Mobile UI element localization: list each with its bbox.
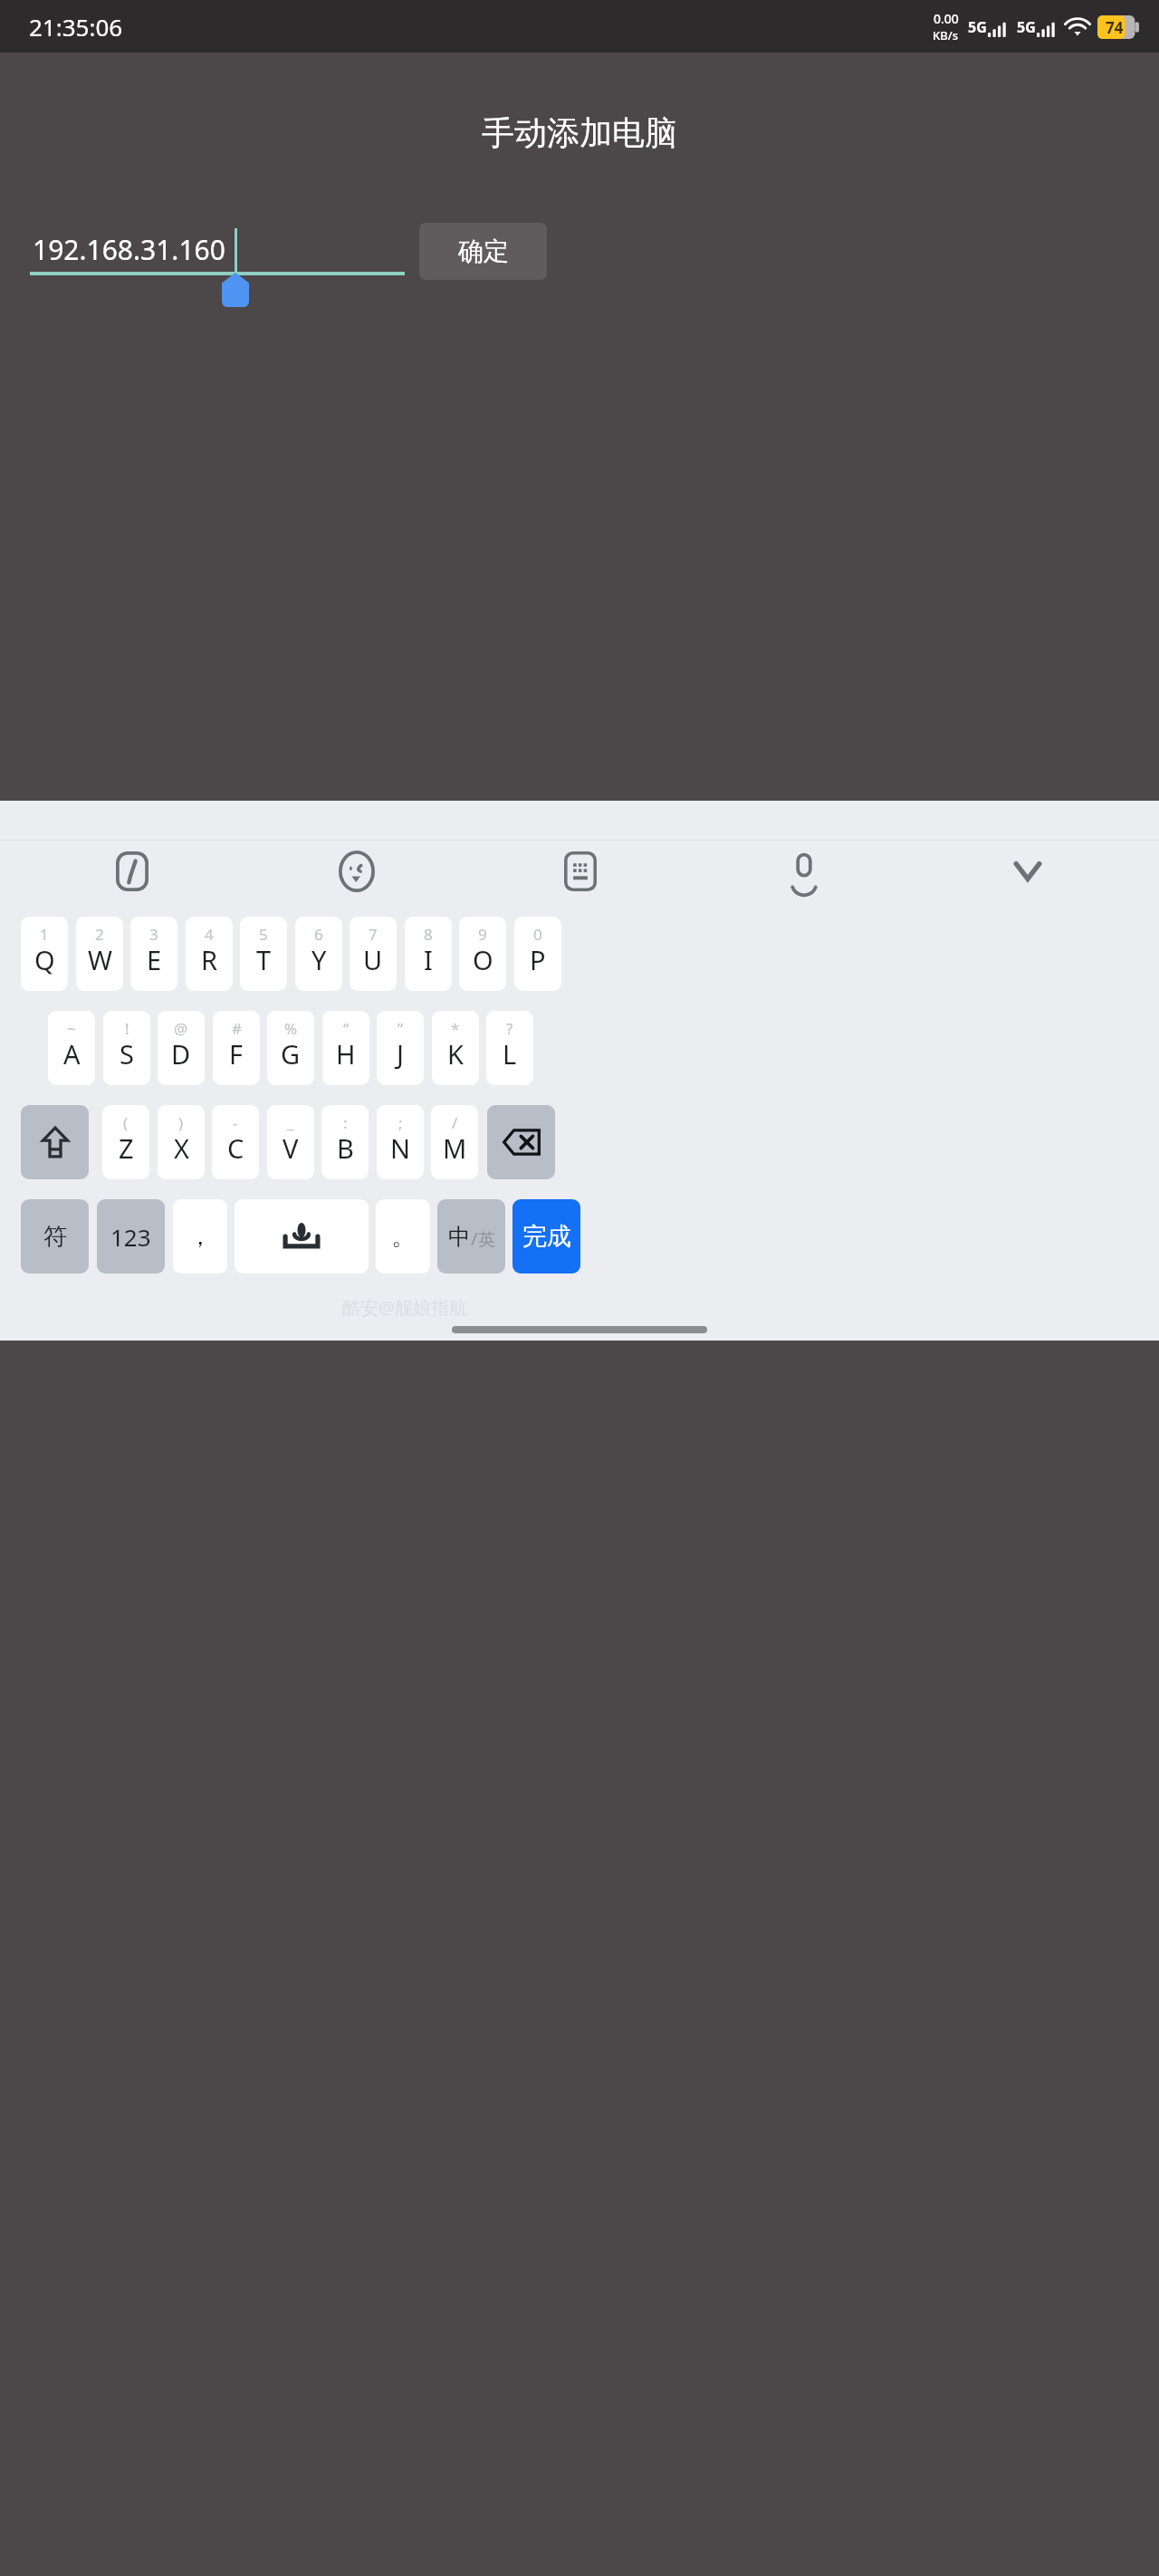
- staticText: _: [287, 1112, 294, 1133]
- staticText: 6: [314, 924, 323, 945]
- button[interactable]: !: [103, 1011, 150, 1085]
- staticText: 21:35:06: [29, 11, 123, 43]
- staticText: 1: [40, 924, 49, 945]
- staticText: R: [201, 942, 218, 977]
- staticText: /: [452, 1112, 458, 1133]
- staticText: G: [281, 1036, 301, 1072]
- button[interactable]: 9: [459, 917, 506, 991]
- button[interactable]: /: [431, 1105, 478, 1179]
- button[interactable]: ): [158, 1105, 205, 1179]
- staticText: “: [343, 1018, 350, 1039]
- staticText: 0: [533, 924, 542, 945]
- staticText: /: [471, 1226, 478, 1251]
- staticText: A: [63, 1036, 81, 1072]
- staticText: 确定: [458, 235, 509, 267]
- staticText: -: [233, 1112, 238, 1133]
- button[interactable]: 0: [514, 917, 561, 991]
- staticText: :: [343, 1112, 348, 1133]
- staticText: S: [120, 1036, 134, 1072]
- staticText: 8: [424, 924, 433, 945]
- button[interactable]: %: [267, 1011, 314, 1085]
- button[interactable]: 符: [21, 1199, 89, 1274]
- button[interactable]: Hide keyboard: [915, 841, 1139, 902]
- button[interactable]: Voice input: [692, 841, 915, 902]
- button[interactable]: 确定: [419, 223, 547, 280]
- staticText: 0.00: [934, 10, 959, 27]
- staticText: 3: [149, 924, 158, 945]
- button[interactable]: 4: [186, 917, 233, 991]
- button[interactable]: ，: [173, 1199, 227, 1274]
- staticText: W: [88, 942, 112, 977]
- staticText: 酷安@舰娘指航: [342, 1295, 467, 1320]
- staticText: D: [171, 1036, 191, 1072]
- staticText: ;: [398, 1112, 403, 1133]
- staticText: KB/s: [933, 27, 959, 43]
- staticText: ): [178, 1112, 184, 1133]
- button[interactable]: 中: [437, 1199, 505, 1274]
- staticText: E: [147, 942, 162, 977]
- button[interactable]: #: [213, 1011, 260, 1085]
- button[interactable]: Space: [235, 1199, 369, 1274]
- staticText: %: [284, 1018, 298, 1039]
- staticText: *: [451, 1018, 460, 1039]
- staticText: (: [123, 1112, 129, 1133]
- button[interactable]: Handwriting input: [20, 841, 244, 902]
- staticText: N: [390, 1130, 411, 1166]
- staticText: ~: [67, 1018, 76, 1039]
- button[interactable]: “: [322, 1011, 369, 1085]
- button[interactable]: *: [432, 1011, 479, 1085]
- staticText: C: [227, 1130, 244, 1166]
- staticText: J: [397, 1036, 404, 1072]
- staticText: 9: [478, 924, 487, 945]
- staticText: ”: [398, 1018, 404, 1039]
- button[interactable]: 123: [97, 1199, 165, 1274]
- button[interactable]: 5: [240, 917, 287, 991]
- button[interactable]: Emoji: [244, 841, 468, 902]
- staticText: 。: [391, 1222, 415, 1252]
- staticText: O: [473, 942, 493, 977]
- staticText: F: [229, 1036, 244, 1072]
- staticText: I: [424, 942, 433, 977]
- staticText: 123: [110, 1221, 151, 1253]
- staticText: #: [232, 1018, 242, 1039]
- staticText: 5: [259, 924, 268, 945]
- button[interactable]: (: [102, 1105, 149, 1179]
- staticText: H: [336, 1036, 356, 1072]
- staticText: Y: [311, 942, 327, 977]
- button[interactable]: 3: [130, 917, 177, 991]
- button[interactable]: ;: [377, 1105, 424, 1179]
- button[interactable]: ?: [486, 1011, 533, 1085]
- staticText: 英: [478, 1229, 495, 1251]
- button[interactable]: -: [212, 1105, 259, 1179]
- button[interactable]: _: [267, 1105, 314, 1179]
- button[interactable]: Shift: [21, 1105, 89, 1179]
- staticText: K: [447, 1036, 464, 1072]
- button[interactable]: ”: [377, 1011, 424, 1085]
- staticText: U: [363, 942, 383, 977]
- button[interactable]: 。: [376, 1199, 430, 1274]
- button[interactable]: :: [321, 1105, 369, 1179]
- button[interactable]: Keyboard layout: [468, 841, 692, 902]
- staticText: 192.168.31.160: [33, 231, 225, 268]
- staticText: 74: [1106, 17, 1124, 38]
- staticText: T: [256, 942, 272, 977]
- button[interactable]: 6: [295, 917, 342, 991]
- staticText: X: [174, 1130, 189, 1166]
- staticText: 7: [369, 924, 378, 945]
- button[interactable]: 2: [76, 917, 123, 991]
- button[interactable]: ~: [48, 1011, 95, 1085]
- button[interactable]: 1: [21, 917, 68, 991]
- staticText: M: [443, 1130, 467, 1166]
- button[interactable]: Backspace: [487, 1105, 555, 1179]
- staticText: 4: [205, 924, 214, 945]
- button[interactable]: 7: [350, 917, 397, 991]
- button[interactable]: 8: [405, 917, 452, 991]
- button[interactable]: 完成: [512, 1199, 580, 1274]
- staticText: ?: [506, 1018, 513, 1039]
- button[interactable]: @: [158, 1011, 205, 1085]
- staticText: Z: [119, 1130, 134, 1166]
- staticText: 手动添加电脑: [482, 112, 677, 153]
- staticText: !: [125, 1018, 129, 1039]
- staticText: 完成: [522, 1221, 571, 1252]
- staticText: Q: [34, 942, 55, 977]
